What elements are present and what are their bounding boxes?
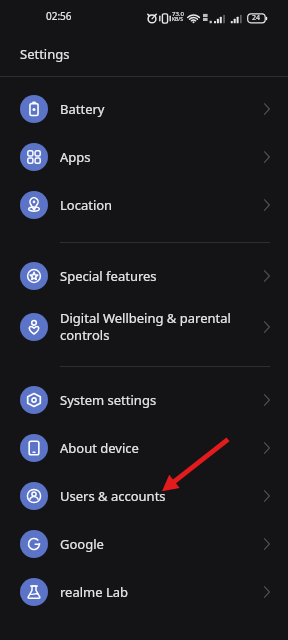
staticText: KB/S <box>172 16 183 23</box>
button[interactable]: realme Lab <box>0 568 288 616</box>
staticText: Users & accounts <box>60 487 258 505</box>
button[interactable]: System settings <box>0 376 288 424</box>
button[interactable]: Special features <box>0 252 288 300</box>
staticText: Digital Wellbeing & parental controls <box>60 309 258 344</box>
staticText: 24 <box>252 13 261 23</box>
button[interactable]: Location <box>0 181 288 229</box>
button[interactable]: Google <box>0 520 288 568</box>
staticText: 02:56 <box>46 9 72 23</box>
staticText: 73.0 <box>172 10 184 18</box>
staticText: realme Lab <box>60 583 258 601</box>
button[interactable]: Users & accounts <box>0 472 288 520</box>
staticText: About device <box>60 439 258 457</box>
button[interactable]: Battery <box>0 85 288 133</box>
staticText: Special features <box>60 267 258 285</box>
staticText: Apps <box>60 148 258 166</box>
staticText: Google <box>60 535 258 553</box>
button[interactable]: Apps <box>0 133 288 181</box>
staticText: Location <box>60 196 258 214</box>
button[interactable]: Digital Wellbeing & parental controls <box>0 300 288 353</box>
staticText: Settings <box>20 45 70 63</box>
staticText: System settings <box>60 391 258 409</box>
button[interactable]: About device <box>0 424 288 472</box>
staticText: Battery <box>60 100 258 118</box>
